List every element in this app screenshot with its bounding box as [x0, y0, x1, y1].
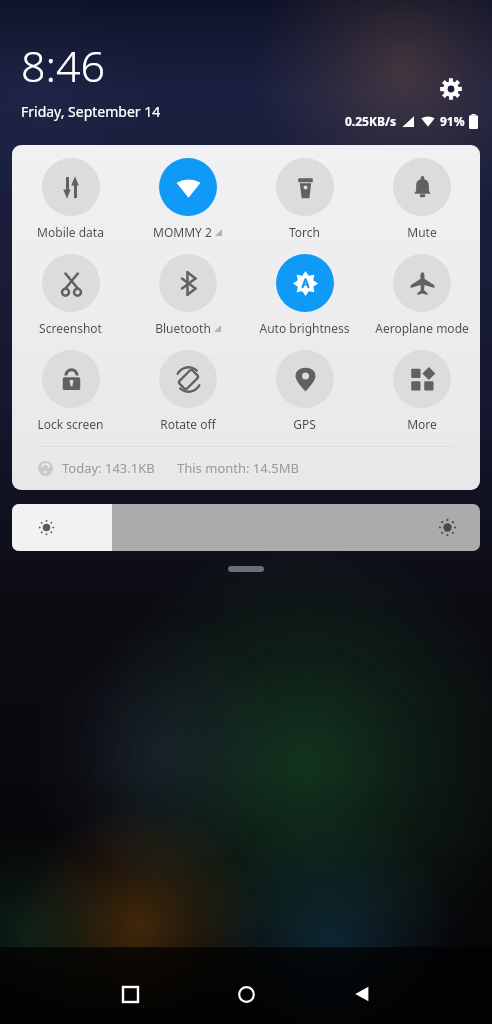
staticText: Mobile data — [37, 224, 104, 240]
staticText: 8:46 — [21, 36, 106, 95]
staticText: Lock screen — [37, 416, 104, 432]
staticText: Auto brightness — [259, 320, 350, 336]
staticText: Torch — [289, 224, 320, 240]
staticText: Screenshot — [39, 320, 102, 336]
staticText: GPS — [293, 416, 316, 432]
button[interactable]: Home — [222, 970, 270, 1018]
button[interactable]: Torch — [246, 158, 363, 240]
staticText: Friday, September 14 — [21, 102, 161, 121]
staticText: MOMMY 2 — [153, 224, 212, 240]
button[interactable]: Mute — [363, 158, 480, 240]
staticText: Mute — [407, 224, 437, 240]
staticText: This month: 14.5MB — [177, 459, 299, 477]
button[interactable]: MOMMY 2 — [129, 158, 246, 240]
staticText: Aeroplane mode — [375, 320, 469, 336]
button[interactable]: Screenshot — [12, 254, 129, 336]
button[interactable]: Back — [338, 970, 386, 1018]
staticText: 0.25KB/s — [345, 113, 396, 129]
button[interactable]: More — [363, 350, 480, 432]
button[interactable]: Rotate off — [129, 350, 246, 432]
button[interactable]: Lock screen — [12, 350, 129, 432]
button[interactable]: Brightness — [12, 504, 480, 551]
button[interactable]: Recent apps — [106, 970, 154, 1018]
staticText: Bluetooth — [155, 320, 211, 336]
button[interactable]: Today: 143.1KB — [12, 447, 480, 490]
staticText: Today: 143.1KB — [62, 459, 155, 477]
staticText: Rotate off — [160, 416, 216, 432]
button[interactable]: GPS — [246, 350, 363, 432]
button[interactable]: Bluetooth — [129, 254, 246, 336]
staticText: 91% — [440, 113, 465, 129]
button[interactable]: Settings — [432, 70, 470, 108]
button[interactable]: Mobile data — [12, 158, 129, 240]
staticText: More — [407, 416, 437, 432]
button[interactable]: Aeroplane mode — [363, 254, 480, 336]
button[interactable]: Auto brightness — [246, 254, 363, 336]
